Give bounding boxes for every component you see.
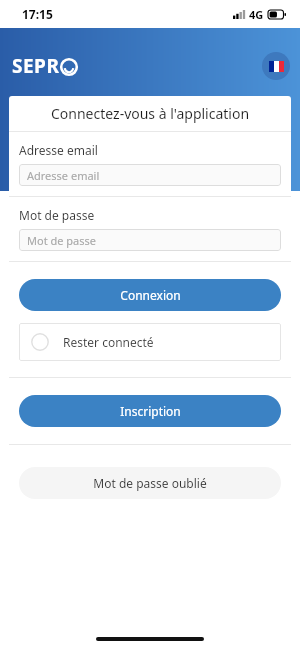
- button[interactable]: Change language: [262, 52, 290, 80]
- staticText: SEPR: [12, 53, 60, 79]
- staticText: Mot de passe oublié: [93, 475, 207, 491]
- button[interactable]: Adresse email: [19, 164, 281, 186]
- staticText: Mot de passe: [19, 207, 95, 223]
- button[interactable]: Rester connecté: [19, 323, 281, 361]
- button[interactable]: Inscription: [19, 395, 281, 427]
- staticText: Adresse email: [27, 168, 100, 183]
- staticText: 17:15: [22, 6, 53, 22]
- staticText: Connexion: [120, 287, 181, 303]
- staticText: 4G: [249, 7, 264, 22]
- button[interactable]: Connexion: [19, 279, 281, 311]
- staticText: Connectez-vous à l'application: [51, 104, 250, 123]
- button[interactable]: Mot de passe oublié: [19, 467, 281, 499]
- button[interactable]: Mot de passe: [19, 229, 281, 251]
- staticText: Rester connecté: [63, 334, 154, 350]
- staticText: Adresse email: [19, 142, 98, 158]
- staticText: Mot de passe: [27, 233, 96, 248]
- staticText: Inscription: [120, 403, 181, 419]
